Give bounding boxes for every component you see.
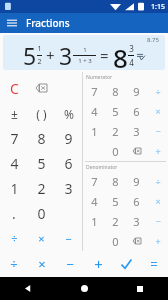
button[interactable]: − — [147, 121, 168, 141]
staticText: × — [155, 105, 161, 117]
button[interactable]: 6 — [126, 191, 147, 211]
button[interactable]: 0 — [105, 141, 126, 161]
button[interactable]: = — [140, 251, 168, 277]
button[interactable]: 4 — [83, 191, 105, 211]
staticText: 4 — [91, 194, 98, 209]
staticText: 5 — [23, 40, 37, 70]
staticText: 1 — [83, 46, 87, 54]
button[interactable]: 0 — [105, 231, 126, 251]
button[interactable]: 1 — [0, 176, 28, 201]
staticText: × — [155, 195, 161, 207]
staticText: ± — [11, 106, 18, 122]
staticText: 5 — [112, 194, 119, 209]
button[interactable]: × — [28, 226, 55, 251]
button[interactable]: 7 — [0, 126, 28, 151]
button[interactable]: + — [84, 251, 112, 277]
button[interactable]: 9 — [55, 126, 82, 151]
button[interactable]: ÷ — [147, 81, 168, 101]
button[interactable]: − — [147, 211, 168, 231]
staticText: 6 — [64, 154, 73, 173]
staticText: ÷ — [11, 231, 18, 246]
button[interactable]: − — [55, 226, 82, 251]
button[interactable]: − — [56, 251, 84, 277]
staticText: 0 — [112, 234, 119, 249]
staticText: 3 — [64, 179, 73, 198]
button[interactable]: ÷ — [0, 251, 28, 277]
staticText: 0 — [112, 144, 119, 159]
button[interactable]: 3 — [126, 121, 147, 141]
button[interactable]: × — [28, 251, 56, 277]
staticText: 9 — [64, 129, 73, 148]
button[interactable]: ÷ — [147, 171, 168, 191]
staticText: + — [155, 235, 161, 247]
button[interactable]: 2 — [28, 176, 55, 201]
button[interactable]: Toggle decimal — [136, 51, 145, 60]
button[interactable]: 6 — [126, 101, 147, 121]
button[interactable]: Confirm — [112, 251, 140, 277]
button[interactable]: 2 — [105, 121, 126, 141]
button[interactable]: 8 — [105, 81, 126, 101]
staticText: % — [64, 106, 74, 122]
button[interactable]: 5 — [105, 101, 126, 121]
staticText: 8 — [112, 174, 119, 189]
staticText: Fractions — [26, 16, 70, 30]
staticText: 7 — [10, 129, 19, 148]
staticText: × — [38, 255, 46, 273]
staticText: 7 — [91, 84, 98, 99]
button[interactable]: 3 — [55, 176, 82, 201]
button[interactable]: 1 — [83, 211, 105, 231]
button[interactable]: ÷ — [0, 226, 28, 251]
button[interactable]: × — [147, 191, 168, 211]
button[interactable]: 1 — [83, 121, 105, 141]
button[interactable]: C — [0, 75, 28, 101]
staticText: ÷ — [155, 175, 161, 187]
button[interactable]: ( ) — [28, 101, 55, 126]
staticText: 0 — [37, 204, 46, 223]
button[interactable]: 7 — [83, 171, 105, 191]
button[interactable]: 3 — [126, 211, 147, 231]
button[interactable]: 9 — [126, 171, 147, 191]
staticText: 1 — [37, 44, 42, 54]
button[interactable]: Open navigation menu — [4, 15, 20, 31]
button[interactable]: . — [0, 201, 28, 226]
staticText: ÷ — [155, 85, 161, 97]
button[interactable]: × — [147, 101, 168, 121]
button[interactable]: 2 — [105, 211, 126, 231]
button[interactable]: + — [147, 141, 168, 161]
staticText: 4 — [129, 57, 134, 68]
button[interactable]: 9 — [126, 81, 147, 101]
staticText: × — [38, 231, 45, 246]
staticText: + — [155, 145, 161, 157]
button[interactable]: 6 — [55, 151, 82, 176]
button[interactable]: Back — [0, 277, 56, 300]
button[interactable]: 4 — [83, 101, 105, 121]
staticText: − — [66, 255, 74, 273]
staticText: 3 — [133, 124, 140, 139]
button[interactable]: 8.75 — [3, 35, 165, 70]
staticText: − — [155, 125, 161, 137]
button[interactable]: 5 — [28, 151, 55, 176]
button[interactable]: 8 — [28, 126, 55, 151]
button[interactable]: 0 — [28, 201, 55, 226]
button[interactable]: Home — [56, 277, 112, 300]
staticText: = — [150, 255, 158, 273]
button[interactable]: % — [55, 101, 82, 126]
button[interactable]: ± — [0, 101, 28, 126]
staticText: − — [65, 231, 72, 246]
staticText: = — [96, 45, 113, 65]
staticText: + — [42, 45, 59, 65]
staticText: 2 — [37, 57, 42, 67]
button[interactable]: 8 — [105, 171, 126, 191]
button[interactable]: Backspace — [126, 231, 147, 251]
button[interactable]: 5 — [105, 191, 126, 211]
button[interactable]: Recent apps — [112, 277, 168, 300]
button[interactable]: Backspace — [126, 141, 147, 161]
button[interactable]: 4 — [0, 151, 28, 176]
staticText: 9 — [133, 84, 140, 99]
staticText: − — [155, 215, 161, 227]
button[interactable]: + — [147, 231, 168, 251]
staticText: 3 — [129, 43, 134, 54]
button[interactable]: 7 — [83, 81, 105, 101]
button[interactable]: Backspace — [28, 75, 55, 101]
staticText: 5 — [37, 154, 46, 173]
